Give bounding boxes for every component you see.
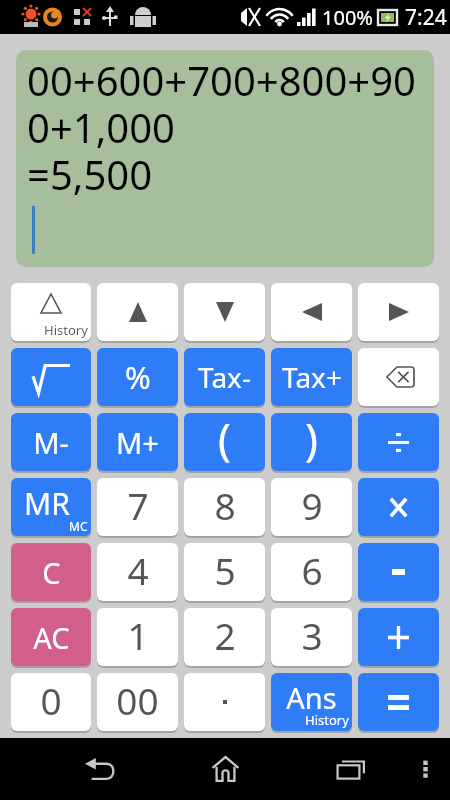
staticText: MC xyxy=(69,518,88,534)
staticText: ( xyxy=(218,413,231,467)
button[interactable]: C xyxy=(11,543,91,601)
staticText: 3 xyxy=(301,610,323,660)
button[interactable]: sqrt xyxy=(11,348,91,406)
staticText: Ans xyxy=(286,678,337,717)
button[interactable]: 0 xyxy=(11,673,91,731)
staticText: 1 xyxy=(127,610,149,660)
button[interactable]: M+ xyxy=(97,413,178,471)
button[interactable]: down xyxy=(184,283,265,341)
staticText: Tax- xyxy=(198,358,251,396)
staticText: C xyxy=(42,553,61,592)
button[interactable]: 7 xyxy=(97,478,178,536)
staticText: History xyxy=(305,711,349,729)
staticText: 5 xyxy=(214,545,236,595)
staticText: 7 xyxy=(127,480,149,530)
button[interactable]: 3 xyxy=(271,608,352,666)
staticText: 2 xyxy=(214,610,236,660)
staticText: 6 xyxy=(301,545,323,595)
button[interactable]: add xyxy=(358,608,439,666)
button[interactable]: dot xyxy=(184,673,265,731)
button[interactable]: mul xyxy=(358,478,439,536)
button[interactable]: % xyxy=(97,348,178,406)
button[interactable]: 6 xyxy=(271,543,352,601)
button[interactable]: Back xyxy=(37,738,163,800)
button[interactable]: left xyxy=(271,283,352,341)
staticText: History xyxy=(44,321,88,339)
staticText: M- xyxy=(33,423,69,462)
button[interactable]: MR xyxy=(11,478,91,536)
staticText: 0 xyxy=(40,675,62,725)
button[interactable]: tri xyxy=(11,283,91,341)
button[interactable]: eq xyxy=(358,673,439,731)
staticText: M+ xyxy=(116,423,159,462)
button[interactable]: Ans xyxy=(271,673,352,731)
button[interactable]: bksp xyxy=(358,348,439,406)
button[interactable]: 9 xyxy=(271,478,352,536)
button[interactable]: 2 xyxy=(184,608,265,666)
button[interactable]: up xyxy=(97,283,178,341)
staticText: 4 xyxy=(127,545,149,595)
staticText: MR xyxy=(24,483,70,524)
staticText: AC xyxy=(33,618,70,657)
staticText: ) xyxy=(305,413,318,467)
button[interactable]: sub xyxy=(358,543,439,601)
button[interactable]: Tax- xyxy=(184,348,265,406)
button[interactable]: Home xyxy=(163,738,288,800)
button[interactable]: More options xyxy=(406,738,450,800)
button[interactable]: AC xyxy=(11,608,91,666)
staticText: 00+600+700+800+90 0+1,000 =5,500 xyxy=(27,53,416,202)
button[interactable]: 4 xyxy=(97,543,178,601)
staticText: Tax+ xyxy=(282,358,342,396)
staticText: % xyxy=(125,356,151,398)
button[interactable]: Tax+ xyxy=(271,348,352,406)
staticText: 100% xyxy=(322,4,373,31)
button[interactable]: 8 xyxy=(184,478,265,536)
staticText: 00 xyxy=(116,675,159,725)
staticText: 7:24 xyxy=(405,3,447,32)
button[interactable]: div xyxy=(358,413,439,471)
button[interactable]: ( xyxy=(184,413,265,471)
button[interactable]: right xyxy=(358,283,439,341)
staticText: 8 xyxy=(214,480,236,530)
staticText: 9 xyxy=(301,480,323,530)
button[interactable]: M- xyxy=(11,413,91,471)
button[interactable]: ) xyxy=(271,413,352,471)
button[interactable]: Recents xyxy=(288,738,413,800)
button[interactable]: 5 xyxy=(184,543,265,601)
button[interactable]: 00 xyxy=(97,673,178,731)
button[interactable]: 1 xyxy=(97,608,178,666)
